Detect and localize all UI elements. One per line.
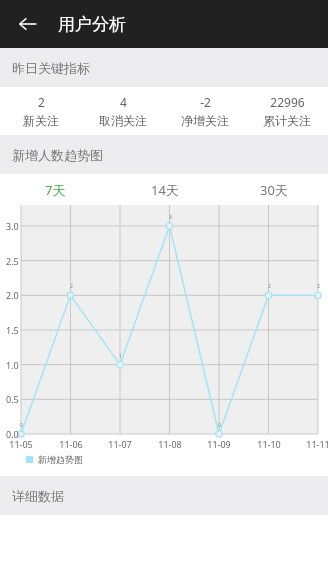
staticText: 2.0 [6, 289, 19, 301]
button[interactable]: 7天 [0, 174, 110, 205]
staticText: 11-10 [257, 438, 281, 450]
staticText: 1.5 [6, 324, 19, 336]
staticText: 7天 [45, 181, 66, 199]
staticText: 0.0 [6, 428, 19, 440]
button[interactable]: -2 [164, 87, 246, 135]
staticText: 详细数据 [12, 488, 64, 504]
button[interactable]: 2 [0, 87, 82, 135]
staticText: 2 [38, 94, 45, 110]
staticText: 11-11 [306, 438, 328, 450]
staticText: 14天 [151, 181, 179, 199]
staticText: 净增关注 [181, 113, 229, 128]
staticText: 11-09 [207, 438, 231, 450]
staticText: 用户分析 [58, 14, 126, 35]
staticText: 取消关注 [99, 113, 147, 128]
staticText: 1 [119, 353, 122, 360]
staticText: 3 [169, 214, 172, 221]
staticText: 2 [70, 283, 73, 290]
staticText: 0.5 [6, 393, 19, 405]
staticText: 11-08 [158, 438, 182, 450]
staticText: 11-05 [9, 438, 33, 450]
staticText: 新增趋势图 [38, 454, 83, 465]
button[interactable]: 22996 [246, 87, 328, 135]
staticText: 0 [218, 422, 221, 429]
staticText: 新关注 [23, 113, 59, 128]
button[interactable]: 14天 [110, 174, 219, 205]
staticText: 30天 [260, 181, 288, 199]
staticText: 2 [317, 283, 320, 290]
staticText: 新增人数趋势图 [12, 147, 103, 163]
staticText: 11-06 [59, 438, 83, 450]
staticText: 0 [20, 422, 23, 429]
staticText: 11-07 [108, 438, 132, 450]
button[interactable]: 30天 [219, 174, 328, 205]
button[interactable]: Back [8, 4, 48, 44]
staticText: 4 [120, 94, 127, 110]
staticText: 22996 [270, 94, 305, 110]
staticText: 昨日关键指标 [12, 60, 90, 76]
button[interactable]: 4 [82, 87, 164, 135]
staticText: 3.0 [6, 220, 19, 232]
staticText: 2.5 [6, 255, 19, 267]
staticText: 累计关注 [263, 113, 311, 128]
staticText: -2 [200, 94, 211, 110]
staticText: 1.0 [6, 359, 19, 371]
staticText: 2 [268, 283, 271, 290]
